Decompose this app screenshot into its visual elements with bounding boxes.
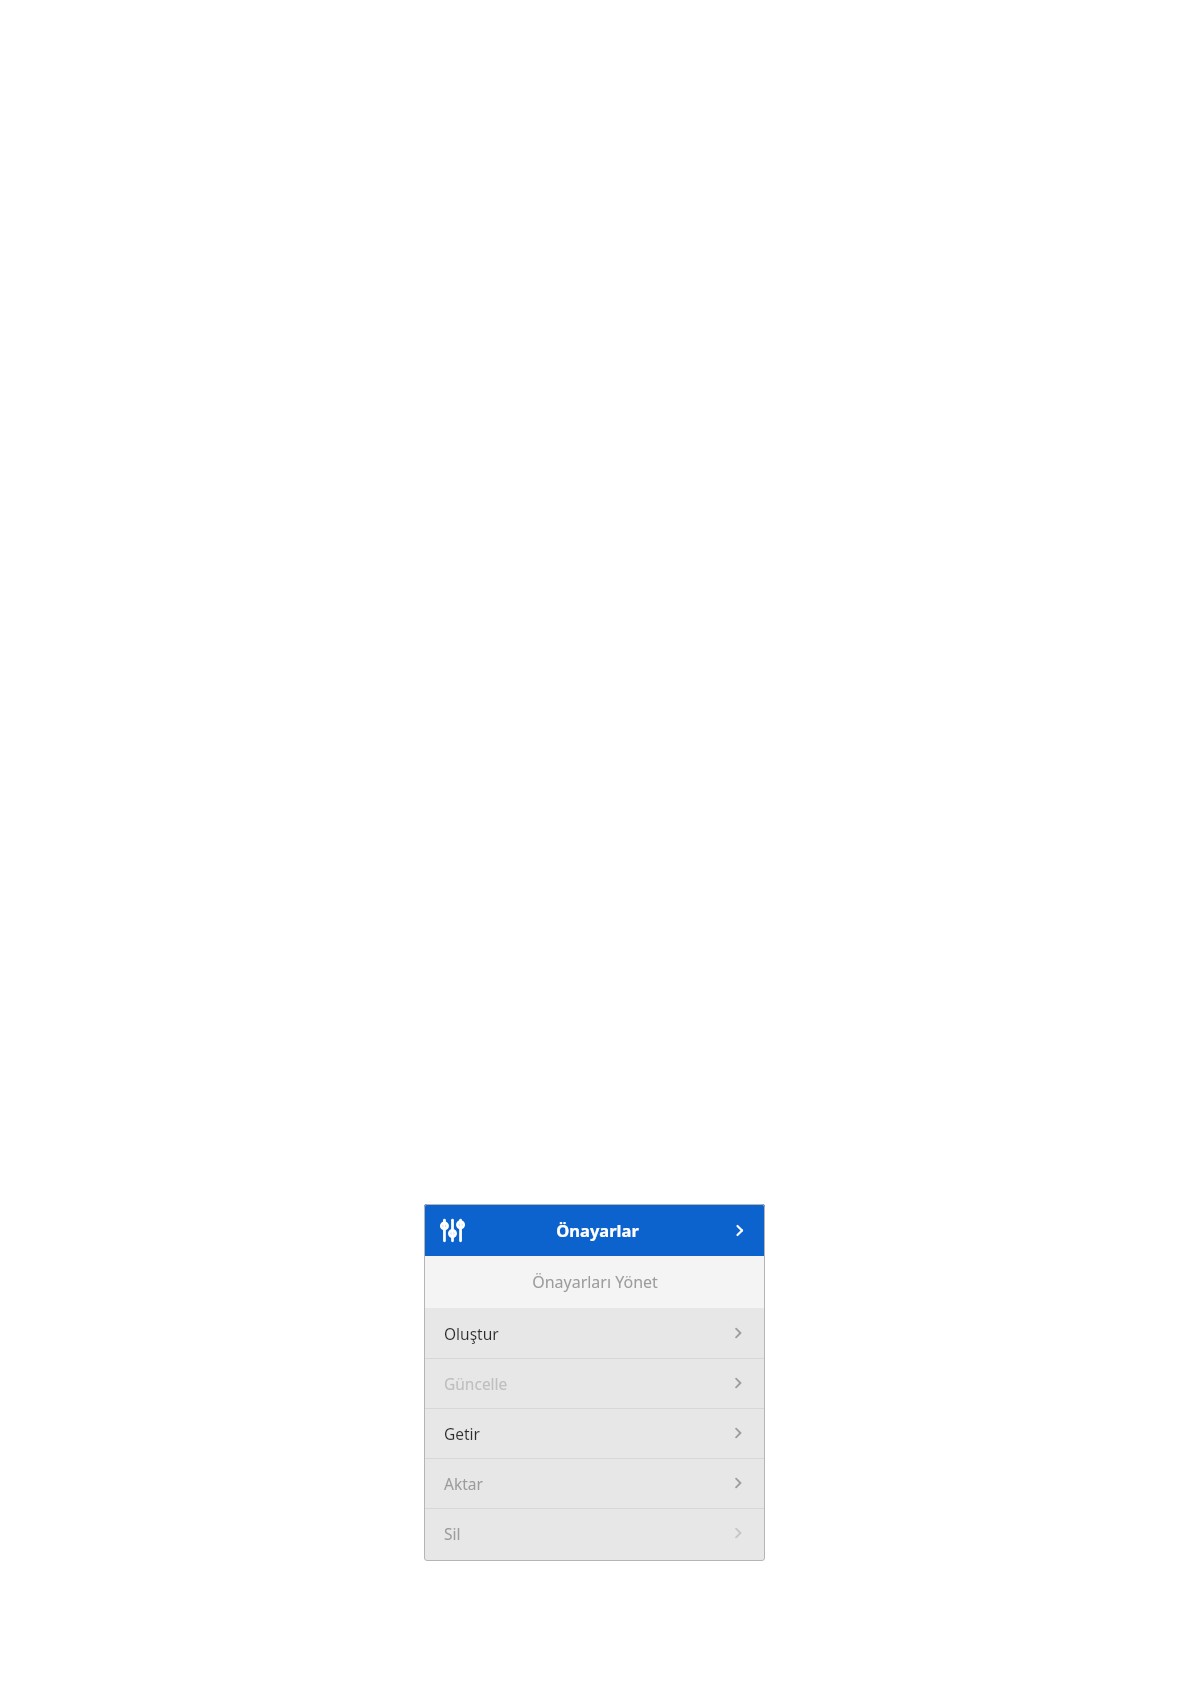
other: Presets	[441, 1219, 464, 1242]
button[interactable]: Güncelle	[424, 1358, 765, 1408]
button[interactable]: Getir	[424, 1408, 765, 1458]
button[interactable]: Oluştur	[424, 1308, 765, 1358]
other: Open presets	[731, 1222, 748, 1239]
button[interactable]: Sil	[424, 1508, 765, 1558]
button[interactable]: Presets	[424, 1204, 765, 1256]
staticText: Önayarları Yönet	[532, 1271, 658, 1293]
button[interactable]: Önayarları Yönet	[424, 1256, 765, 1308]
staticText: Önayarlar	[464, 1219, 731, 1241]
staticText: Güncelle	[444, 1373, 730, 1394]
staticText: Oluştur	[444, 1323, 730, 1344]
staticText: Aktar	[444, 1473, 730, 1494]
button[interactable]: Aktar	[424, 1458, 765, 1508]
staticText: Getir	[444, 1423, 730, 1444]
staticText: Sil	[444, 1523, 730, 1544]
